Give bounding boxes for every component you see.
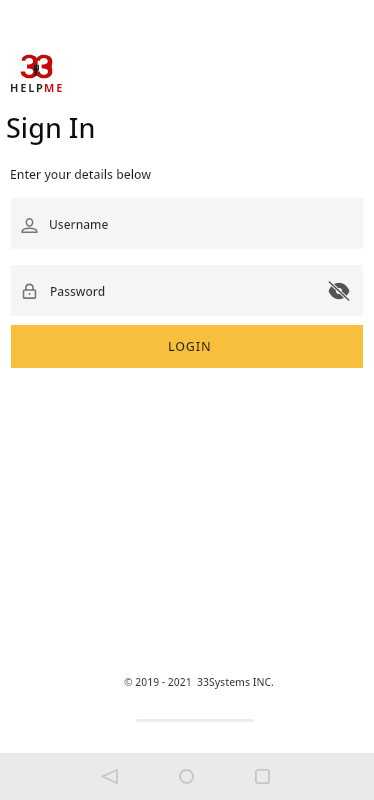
staticText: LOGIN	[168, 338, 212, 355]
button[interactable]: Back	[87, 754, 131, 798]
staticText: HELP	[10, 80, 45, 95]
button[interactable]: Username	[11, 198, 363, 249]
staticText: Sign In	[6, 109, 96, 146]
staticText: Password	[50, 283, 106, 299]
button[interactable]: Show password	[319, 271, 359, 311]
button[interactable]: Password	[11, 265, 363, 316]
staticText: ME	[44, 80, 65, 95]
staticText: Enter your details below	[10, 166, 152, 183]
staticText: © 2019 - 2021 33Systems INC.	[124, 675, 274, 689]
button[interactable]: Home	[164, 754, 208, 798]
staticText: Username	[49, 216, 109, 232]
button[interactable]: LOGIN	[11, 325, 363, 368]
button[interactable]: Recent apps	[240, 754, 284, 798]
